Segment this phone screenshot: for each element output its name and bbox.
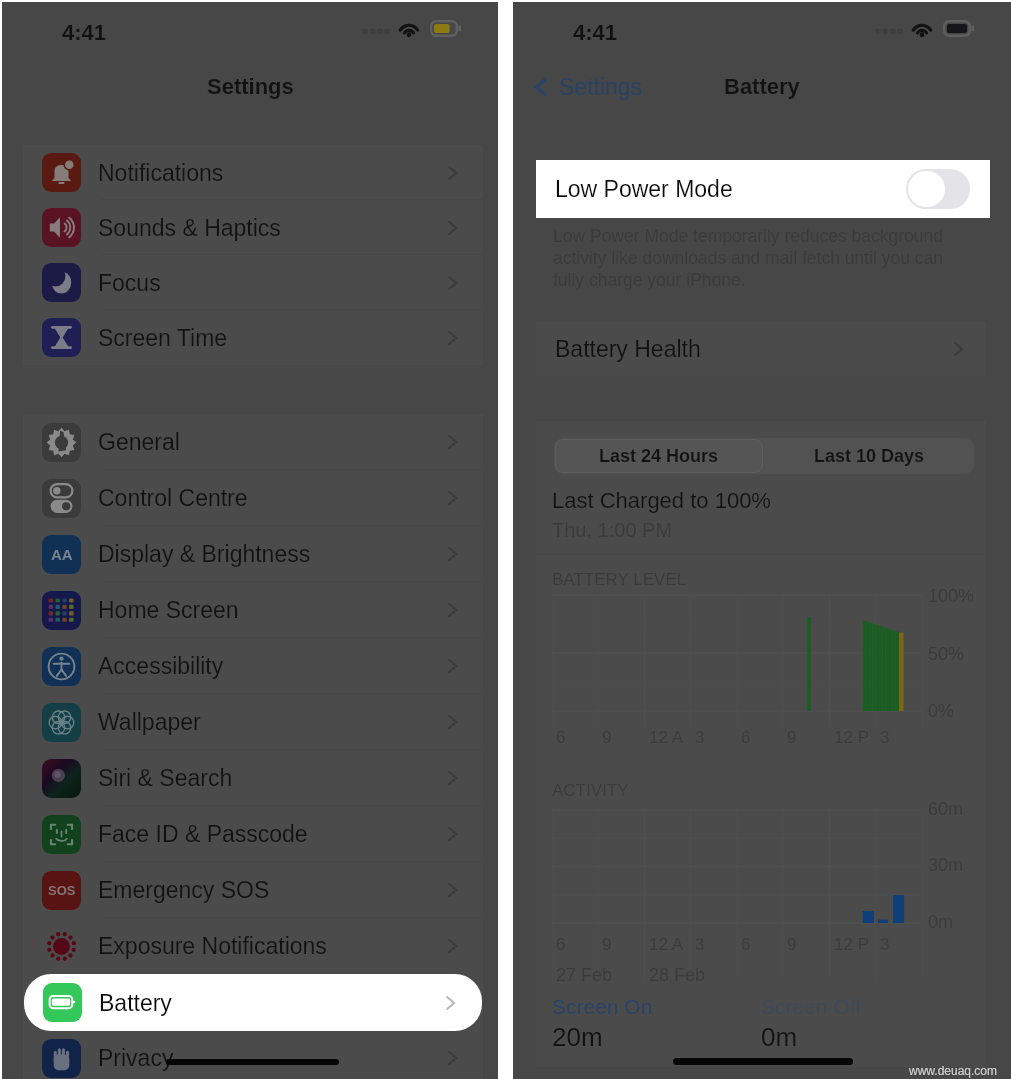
staticText: 28 Feb bbox=[649, 965, 706, 985]
button[interactable]: Privacy bbox=[23, 1030, 483, 1079]
staticText: Wallpaper bbox=[98, 709, 201, 735]
button[interactable]: Battery Health bbox=[536, 322, 986, 376]
staticText: 3 bbox=[695, 728, 705, 747]
button[interactable]: Control Centre bbox=[23, 470, 483, 526]
button[interactable]: Sounds & Haptics bbox=[23, 200, 483, 255]
staticText: 12 A bbox=[649, 728, 684, 747]
staticText: 0% bbox=[928, 701, 955, 721]
staticText: Settings bbox=[207, 74, 294, 99]
staticText: 9 bbox=[787, 728, 797, 747]
staticText: Screen On bbox=[552, 995, 653, 1018]
staticText: Last 24 Hours bbox=[599, 446, 719, 466]
staticText: Control Centre bbox=[98, 485, 248, 511]
staticText: Battery Health bbox=[555, 336, 701, 362]
staticText: 6 bbox=[556, 935, 566, 954]
staticText: Privacy bbox=[98, 1045, 174, 1071]
staticText: Notifications bbox=[98, 160, 224, 186]
button[interactable]: Battery bbox=[24, 974, 482, 1031]
button[interactable]: Last 10 Days bbox=[764, 438, 974, 474]
staticText: 27 Feb bbox=[556, 965, 613, 985]
staticText: 0m bbox=[761, 1022, 798, 1051]
staticText: 6 bbox=[741, 728, 751, 747]
staticText: 100% bbox=[928, 586, 975, 606]
staticText: SOS bbox=[48, 883, 76, 898]
staticText: Last Charged to 100% bbox=[552, 488, 771, 513]
button[interactable]: General bbox=[23, 414, 483, 470]
staticText: 3 bbox=[695, 935, 705, 954]
button[interactable]: Last 24 Hours bbox=[555, 439, 763, 473]
staticText: www.deuaq.com bbox=[909, 1064, 998, 1077]
button[interactable]: Screen Time bbox=[23, 310, 483, 365]
staticText: Siri & Search bbox=[98, 765, 233, 791]
button[interactable]: Low Power Mode bbox=[536, 160, 990, 218]
staticText: Settings bbox=[559, 74, 643, 100]
staticText: Screen Time bbox=[98, 325, 228, 351]
staticText: 20m bbox=[552, 1022, 603, 1051]
staticText: 9 bbox=[602, 728, 612, 747]
button[interactable]: Focus bbox=[23, 255, 483, 310]
button[interactable]: Home Screen bbox=[23, 582, 483, 638]
staticText: Battery bbox=[724, 74, 800, 99]
button[interactable]: AA bbox=[23, 526, 483, 582]
staticText: 50% bbox=[928, 644, 965, 664]
button[interactable]: Wallpaper bbox=[23, 694, 483, 750]
staticText: Display & Brightness bbox=[98, 541, 311, 567]
staticText: BATTERY LEVEL bbox=[552, 570, 687, 589]
staticText: 3 bbox=[880, 935, 890, 954]
button[interactable]: SOS bbox=[23, 862, 483, 918]
staticText: Exposure Notifications bbox=[98, 933, 327, 959]
button[interactable]: Face ID & Passcode bbox=[23, 806, 483, 862]
staticText: Screen Off bbox=[761, 995, 861, 1018]
staticText: Emergency SOS bbox=[98, 877, 270, 903]
staticText: 30m bbox=[928, 855, 964, 875]
staticText: Sounds & Haptics bbox=[98, 215, 281, 241]
staticText: 9 bbox=[787, 935, 797, 954]
staticText: Home Screen bbox=[98, 597, 239, 623]
staticText: 9 bbox=[602, 935, 612, 954]
staticText: AA bbox=[51, 546, 73, 563]
staticText: 0m bbox=[928, 912, 954, 932]
button[interactable]: Back bbox=[529, 74, 643, 100]
staticText: Focus bbox=[98, 270, 161, 296]
staticText: General bbox=[98, 429, 180, 455]
staticText: 3 bbox=[880, 728, 890, 747]
staticText: 4:41 bbox=[62, 20, 107, 45]
staticText: Low Power Mode temporarily reduces backg… bbox=[553, 226, 944, 289]
button[interactable]: Exposure Notifications bbox=[23, 918, 483, 974]
staticText: 12 P bbox=[834, 935, 869, 954]
button[interactable]: Accessibility bbox=[23, 638, 483, 694]
staticText: Face ID & Passcode bbox=[98, 821, 308, 847]
staticText: Battery bbox=[99, 990, 172, 1016]
staticText: 4:41 bbox=[573, 20, 618, 45]
button[interactable]: Notifications bbox=[23, 145, 483, 200]
staticText: Thu, 1:00 PM bbox=[552, 519, 673, 541]
staticText: 60m bbox=[928, 799, 964, 819]
staticText: 12 A bbox=[649, 935, 684, 954]
staticText: 6 bbox=[556, 728, 566, 747]
other: Back bbox=[529, 75, 553, 99]
staticText: ACTIVITY bbox=[552, 781, 629, 800]
staticText: 6 bbox=[741, 935, 751, 954]
staticText: 12 P bbox=[834, 728, 869, 747]
staticText: Last 10 Days bbox=[814, 446, 925, 466]
staticText: Low Power Mode bbox=[555, 176, 733, 202]
staticText: Accessibility bbox=[98, 653, 224, 679]
button[interactable]: Siri & Search bbox=[23, 750, 483, 806]
